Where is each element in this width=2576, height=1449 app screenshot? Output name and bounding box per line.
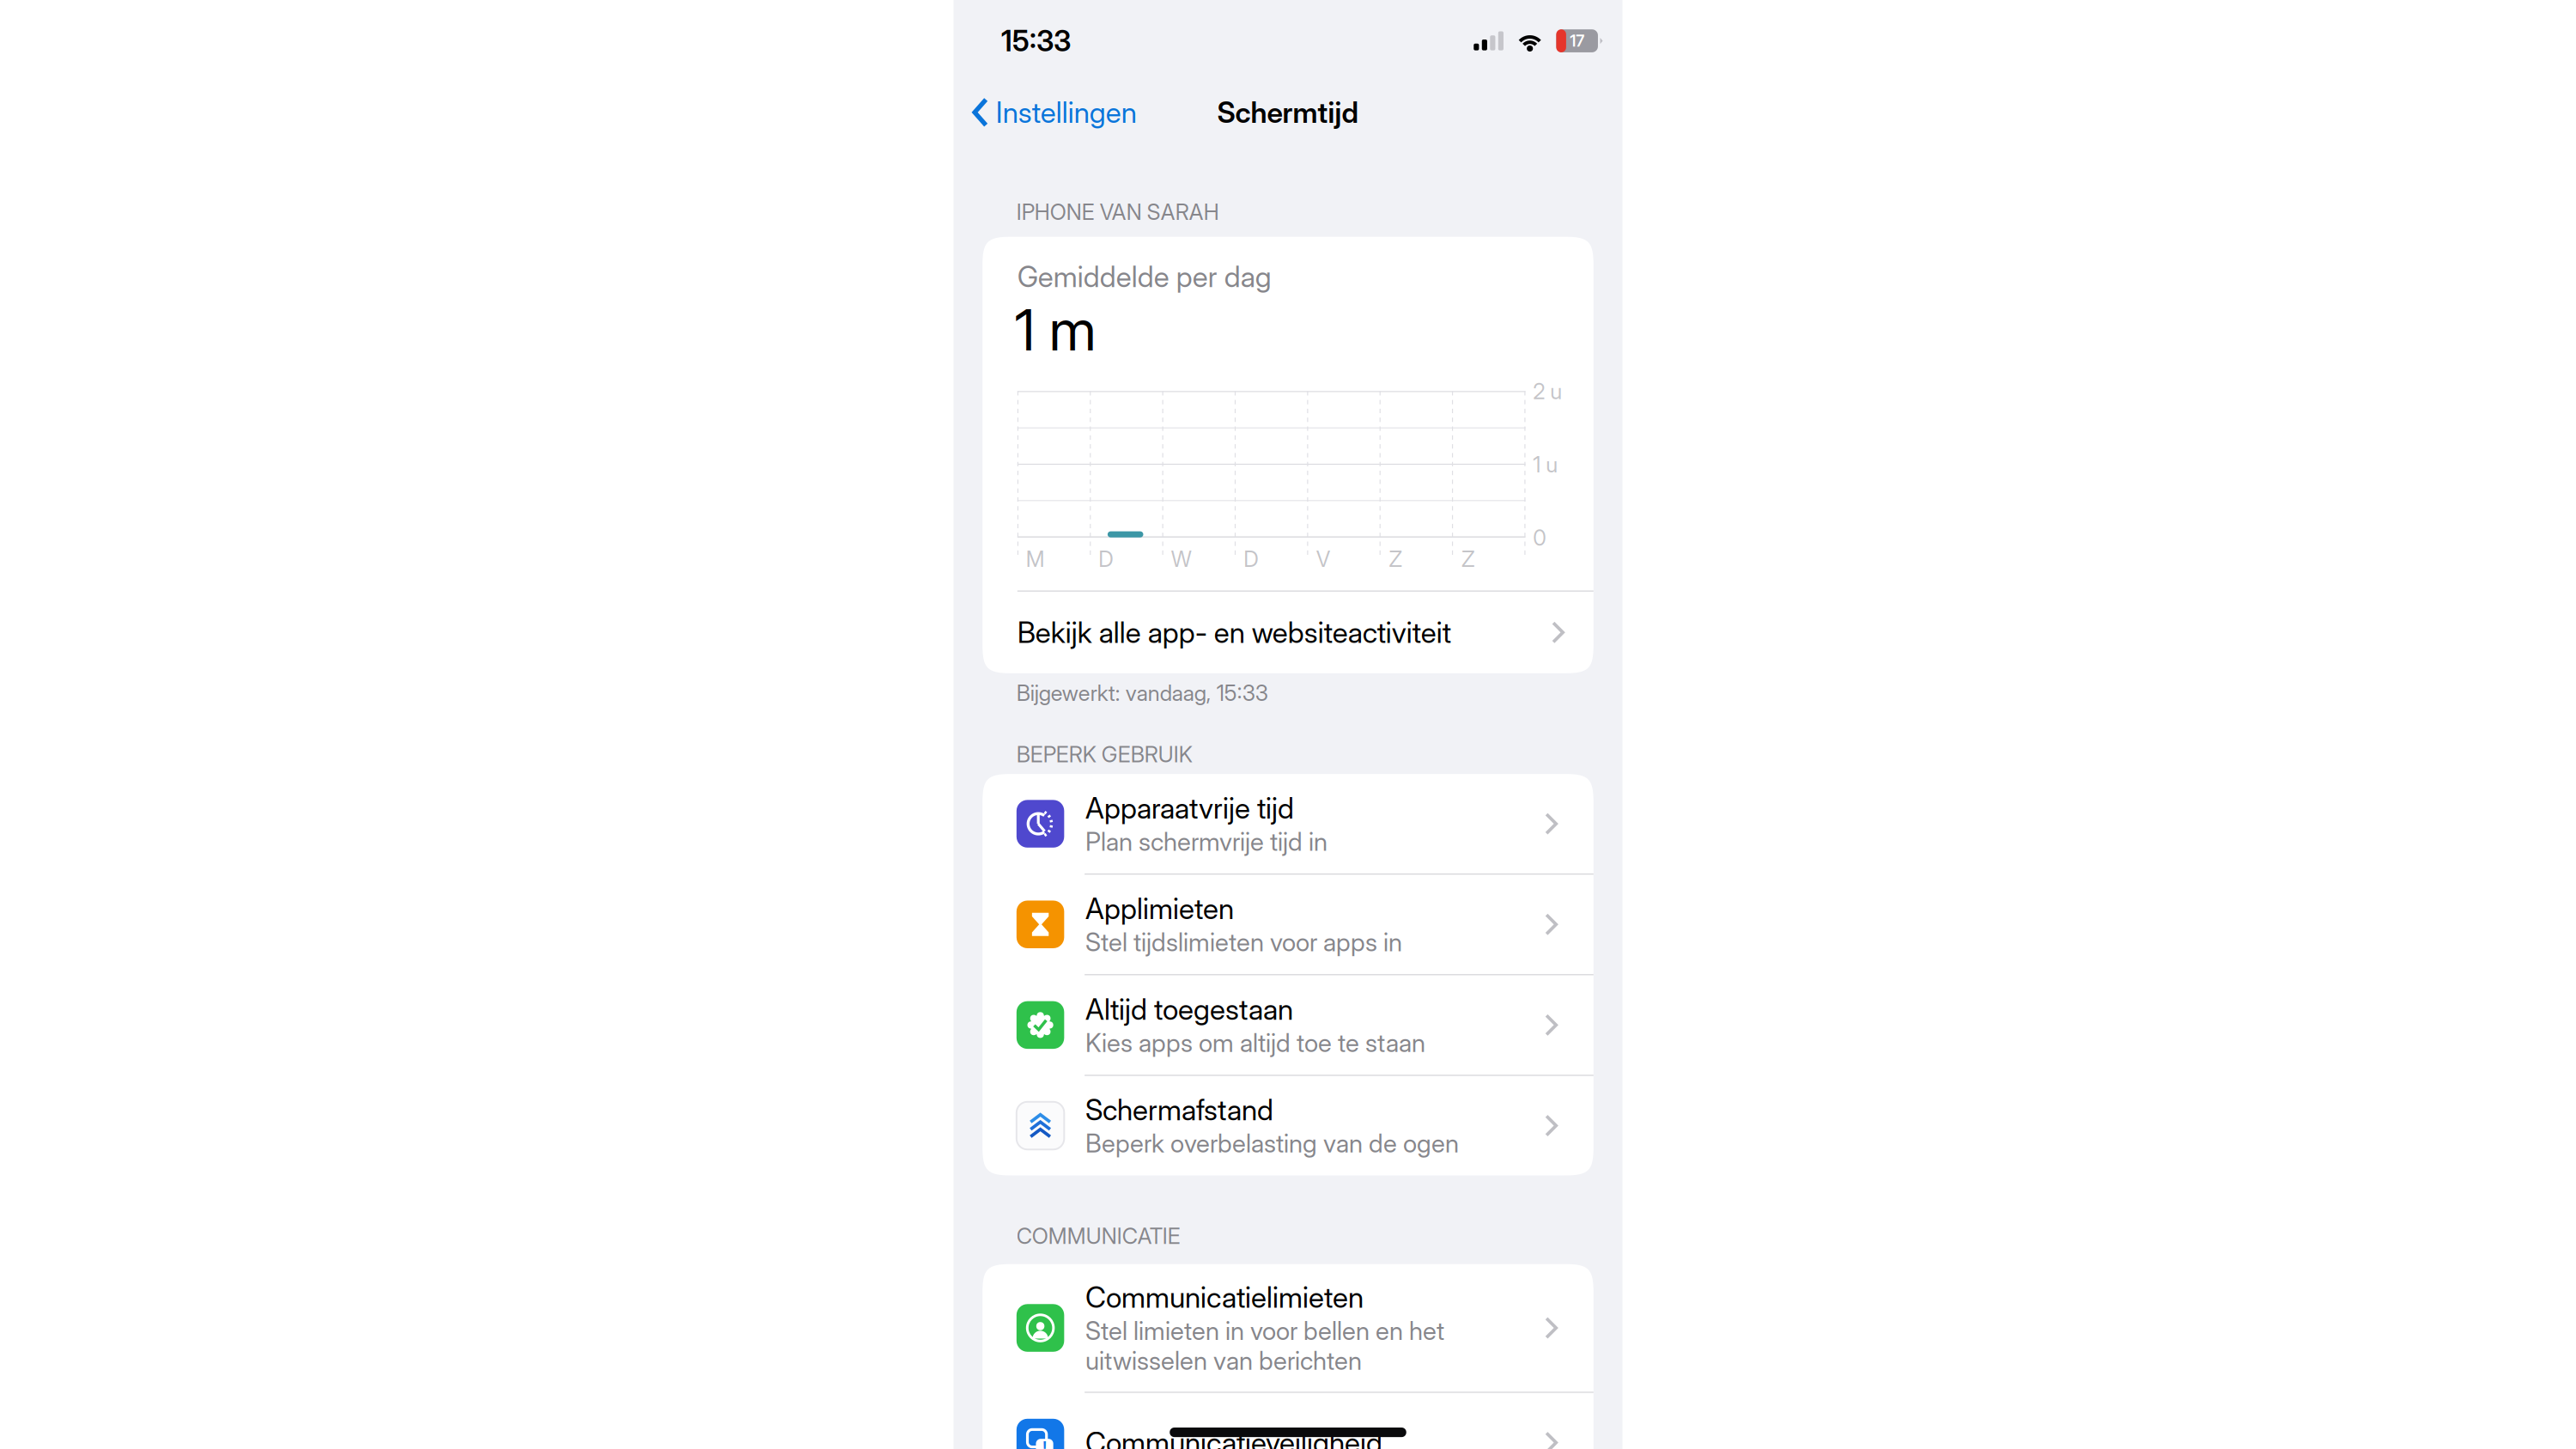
staticText: D bbox=[1098, 546, 1113, 572]
staticText: D bbox=[1244, 546, 1258, 572]
button[interactable]: Apparaatvrije tijd bbox=[982, 774, 1594, 874]
staticText: Bekijk alle app- en websiteactiviteit bbox=[1017, 616, 1451, 649]
staticText: Altijd toegestaan bbox=[1085, 992, 1293, 1026]
staticText: 17 bbox=[1570, 31, 1584, 50]
button[interactable]: Applimieten bbox=[982, 875, 1594, 974]
staticText: 2 u bbox=[1533, 378, 1562, 404]
staticText: Stel limieten in voor bellen en het uitw… bbox=[1085, 1316, 1444, 1375]
staticText: COMMUNICATIE bbox=[1016, 1223, 1180, 1249]
staticText: Stel tijdslimieten voor apps in bbox=[1085, 927, 1402, 957]
staticText: Beperk overbelasting van de ogen bbox=[1085, 1129, 1459, 1158]
staticText: ! bbox=[1043, 1438, 1046, 1449]
staticText: V bbox=[1316, 546, 1331, 572]
button[interactable]: Instellingen bbox=[972, 84, 1137, 141]
staticText: Schermtijd bbox=[1217, 96, 1359, 129]
staticText: Z bbox=[1389, 546, 1403, 572]
staticText: Instellingen bbox=[996, 96, 1137, 129]
staticText: IPHONE VAN SARAH bbox=[1016, 199, 1219, 225]
staticText: BEPERK GEBRUIK bbox=[1016, 742, 1193, 767]
staticText: 1 u bbox=[1533, 452, 1558, 477]
button[interactable]: Altijd toegestaan bbox=[982, 975, 1594, 1075]
button[interactable]: Schermafstand bbox=[982, 1076, 1594, 1175]
staticText: Bijgewerkt: vandaag, 15:33 bbox=[1016, 680, 1268, 706]
button[interactable]: ! bbox=[982, 1393, 1594, 1449]
staticText: W bbox=[1171, 546, 1192, 572]
staticText: 0 bbox=[1533, 525, 1547, 550]
staticText: Z bbox=[1461, 546, 1475, 572]
staticText: Schermafstand bbox=[1085, 1093, 1273, 1127]
button[interactable]: Communicatielimieten bbox=[982, 1264, 1594, 1392]
button[interactable]: Bekijk alle app- en websiteactiviteit bbox=[982, 592, 1594, 673]
staticText: Communicatieveiligheid bbox=[1085, 1426, 1383, 1449]
staticText: 1 m bbox=[1015, 297, 1096, 363]
staticText: M bbox=[1026, 546, 1045, 572]
staticText: 15:33 bbox=[1001, 24, 1071, 58]
staticText: Kies apps om altijd toe te staan bbox=[1085, 1028, 1425, 1058]
staticText: Apparaatvrije tijd bbox=[1085, 791, 1294, 825]
staticText: Gemiddelde per dag bbox=[1017, 260, 1272, 293]
staticText: Communicatielimieten bbox=[1085, 1280, 1364, 1314]
staticText: Applimieten bbox=[1085, 892, 1234, 926]
staticText: Plan schermvrije tijd in bbox=[1085, 827, 1328, 856]
